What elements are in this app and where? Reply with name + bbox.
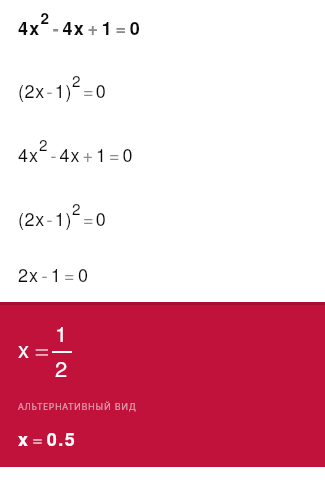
button[interactable]: 4x2 - 4x + 1 = 0 — [0, 7, 325, 51]
button[interactable]: 2x - 1 = 0 — [0, 261, 325, 305]
staticText: 2x - 1 = 0 — [18, 261, 90, 287]
staticText: (2x - 1)2 = 0 — [18, 69, 107, 103]
staticText: 4x2 - 4x + 1 = 0 — [18, 133, 134, 167]
button[interactable]: x — [0, 302, 325, 467]
staticText: 1 — [55, 317, 68, 349]
staticText: x — [18, 333, 30, 365]
button[interactable]: (2x - 1)2 = 0 — [0, 69, 325, 113]
staticText: (2x - 1)2 = 0 — [18, 197, 107, 231]
staticText: 2 — [55, 352, 68, 384]
staticText: x = 0.5 — [18, 426, 77, 452]
staticText: АЛЬТЕРНАТИВНЫЙ ВИД — [18, 400, 137, 413]
staticText: = — [34, 328, 50, 367]
staticText: 4x2 - 4x + 1 = 0 — [18, 7, 142, 41]
button[interactable]: 4x2 - 4x + 1 = 0 — [0, 133, 325, 177]
button[interactable]: (2x - 1)2 = 0 — [0, 197, 325, 241]
